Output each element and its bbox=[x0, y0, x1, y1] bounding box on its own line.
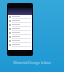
button[interactable] bbox=[8, 23, 32, 27]
button[interactable] bbox=[8, 8, 32, 15]
button[interactable] bbox=[8, 31, 32, 35]
button[interactable] bbox=[8, 39, 32, 43]
button[interactable] bbox=[8, 43, 32, 47]
button[interactable] bbox=[8, 15, 32, 19]
staticText: Material Design Inbox bbox=[0, 60, 64, 65]
button[interactable] bbox=[8, 27, 32, 31]
button[interactable] bbox=[8, 35, 32, 39]
button[interactable] bbox=[8, 19, 32, 23]
